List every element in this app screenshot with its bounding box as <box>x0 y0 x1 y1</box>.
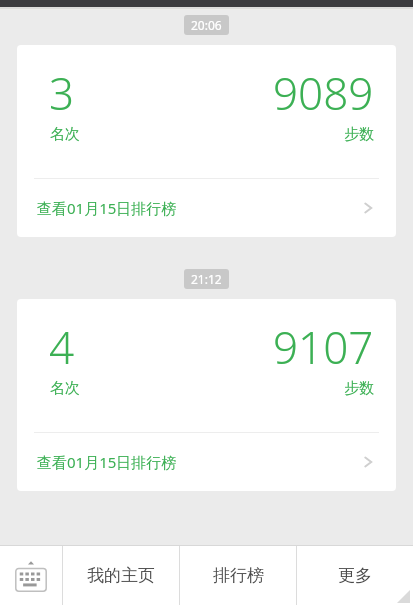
staticText: 9089 <box>273 63 374 123</box>
staticText: 查看01月15日排行榜 <box>37 198 177 218</box>
staticText: 4 <box>49 317 75 377</box>
button[interactable]: 4 <box>17 299 396 491</box>
button[interactable]: 更多 <box>297 545 413 606</box>
staticText: 查看01月15日排行榜 <box>37 452 177 472</box>
button[interactable]: 排行榜 <box>180 545 296 606</box>
staticText: 我的主页 <box>87 565 155 586</box>
staticText: 排行榜 <box>213 565 264 586</box>
staticText: 更多 <box>338 565 372 586</box>
button[interactable]: 我的主页 <box>63 545 179 606</box>
staticText: 21:12 <box>191 271 222 287</box>
button[interactable]: Show keyboard <box>0 545 62 606</box>
staticText: 名次 <box>50 379 80 398</box>
button[interactable]: 查看01月15日排行榜 <box>17 179 396 237</box>
staticText: 步数 <box>344 125 374 144</box>
button[interactable]: 3 <box>17 45 396 237</box>
staticText: 9107 <box>273 317 374 377</box>
button[interactable]: 查看01月15日排行榜 <box>17 433 396 491</box>
staticText: 步数 <box>344 379 374 398</box>
staticText: 3 <box>49 63 75 123</box>
staticText: 名次 <box>50 125 80 144</box>
staticText: 20:06 <box>191 17 222 33</box>
